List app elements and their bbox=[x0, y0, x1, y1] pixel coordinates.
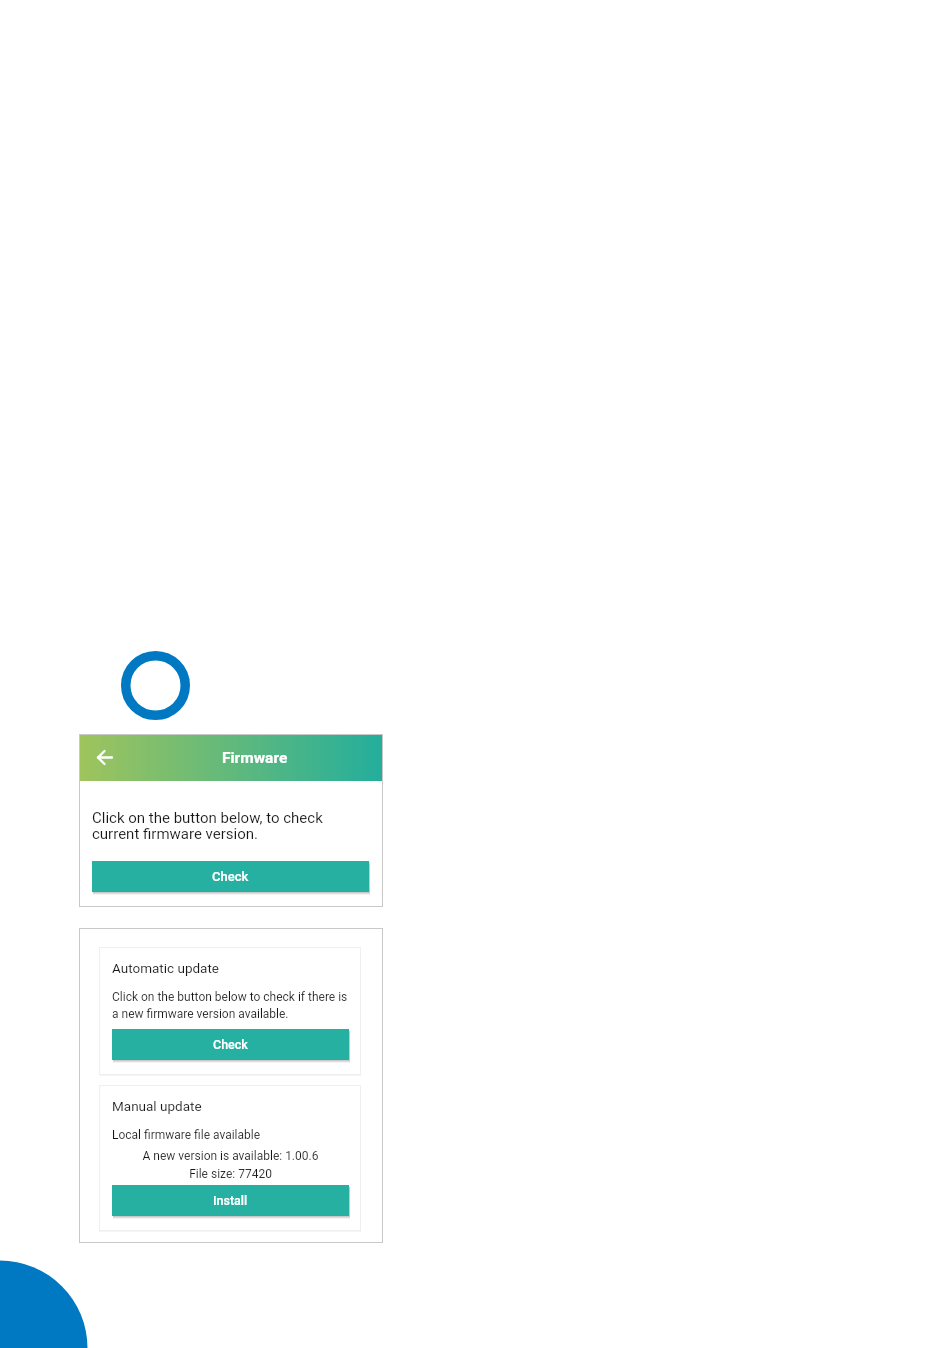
staticText: Automatic update bbox=[112, 960, 220, 976]
staticText: Check bbox=[212, 869, 249, 884]
staticText: A new version is available: 1.00.6 bbox=[112, 1149, 349, 1163]
button[interactable]: Check bbox=[92, 861, 369, 892]
button[interactable]: Check bbox=[112, 1029, 349, 1060]
button[interactable]: Back bbox=[86, 734, 124, 781]
staticText: Local firmware file available bbox=[112, 1128, 261, 1142]
button[interactable]: Install bbox=[112, 1185, 349, 1216]
staticText: Firmware bbox=[222, 749, 288, 767]
staticText: Click on the button below, to check curr… bbox=[92, 809, 323, 843]
staticText: File size: 77420 bbox=[112, 1167, 349, 1181]
staticText: Install bbox=[213, 1193, 248, 1208]
staticText: Check bbox=[213, 1037, 248, 1052]
staticText: Click on the button below to check if th… bbox=[112, 990, 348, 1021]
staticText: Manual update bbox=[112, 1098, 202, 1114]
